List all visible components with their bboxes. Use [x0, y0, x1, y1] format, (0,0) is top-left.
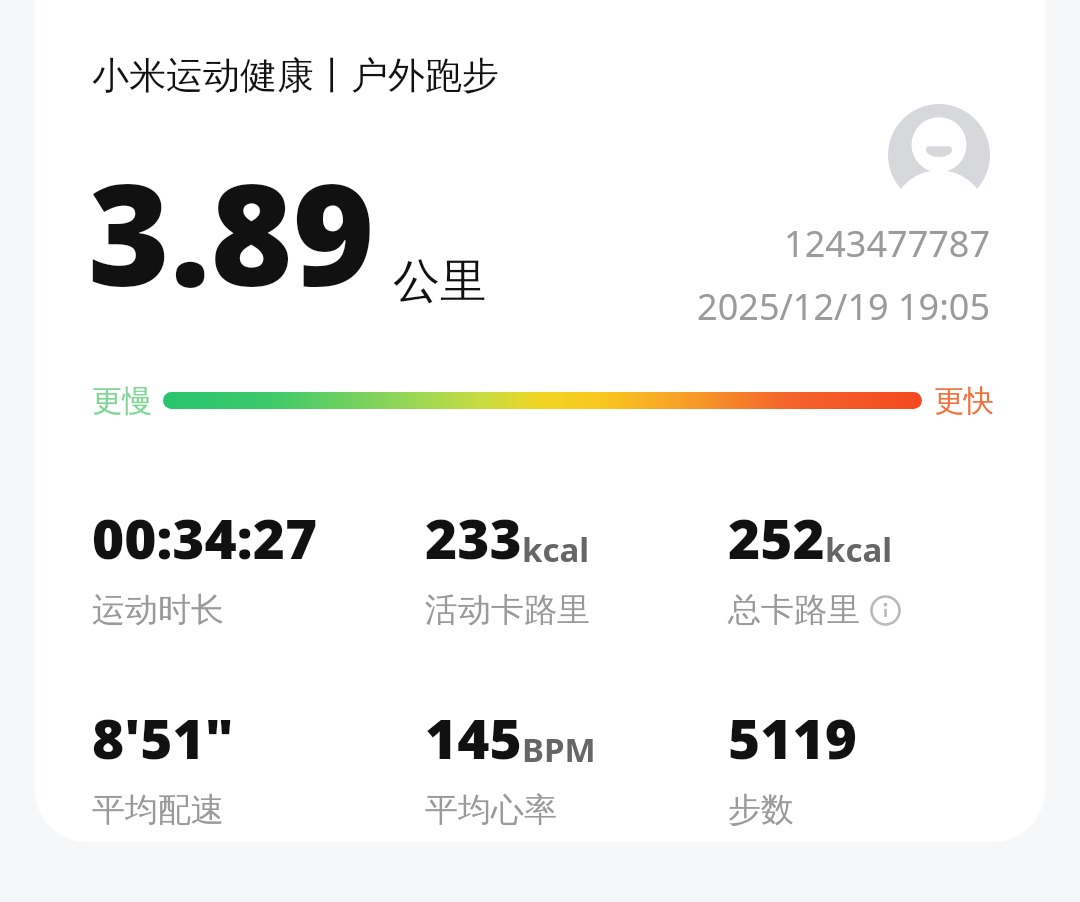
- staticText: 2025/12/19 19:05: [590, 282, 990, 331]
- button[interactable]: 00:34:27: [92, 500, 392, 631]
- staticText: 运动时长: [92, 589, 224, 631]
- staticText: kcal: [825, 527, 893, 572]
- button[interactable]: 更慢: [92, 382, 992, 420]
- button[interactable]: User avatar: [888, 104, 990, 206]
- staticText: 233: [425, 500, 522, 575]
- staticText: 小米运动健康丨户外跑步: [92, 52, 499, 99]
- staticText: 活动卡路里: [425, 589, 590, 631]
- staticText: 3.89: [88, 136, 375, 327]
- button[interactable]: 252: [728, 500, 1028, 631]
- button[interactable]: 8'51": [92, 700, 392, 831]
- staticText: kcal: [522, 527, 590, 572]
- staticText: 平均配速: [92, 789, 224, 831]
- staticText: BPM: [522, 727, 596, 772]
- button[interactable]: 145: [425, 700, 725, 831]
- staticText: 252: [728, 500, 825, 575]
- button[interactable]: Info about total calories: [870, 595, 901, 626]
- staticText: 5119: [728, 700, 857, 775]
- staticText: 总卡路里: [728, 589, 860, 631]
- staticText: 00:34:27: [92, 500, 318, 575]
- button[interactable]: 5119: [728, 700, 1028, 831]
- staticText: 1243477787: [590, 219, 990, 268]
- button[interactable]: 小米运动健康丨户外跑步: [92, 52, 499, 99]
- staticText: 更快: [934, 382, 994, 420]
- staticText: 平均心率: [425, 789, 557, 831]
- staticText: 8'51": [92, 700, 234, 775]
- button[interactable]: 233: [425, 500, 725, 631]
- staticText: 更慢: [92, 382, 152, 420]
- staticText: 公里: [393, 252, 487, 311]
- staticText: 步数: [728, 789, 794, 831]
- staticText: 145: [425, 700, 522, 775]
